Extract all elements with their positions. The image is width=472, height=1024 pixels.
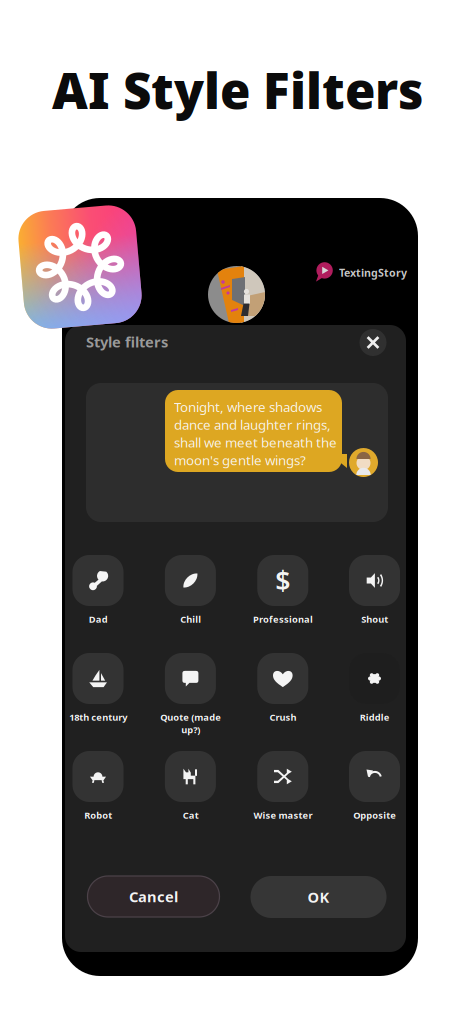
staticText: Tonight, where shadows dance and laughte… bbox=[174, 398, 337, 469]
staticText: TextingStory bbox=[339, 265, 407, 280]
button[interactable]: Opposite bbox=[334, 751, 414, 835]
staticText: Professional bbox=[253, 613, 313, 625]
staticText: 18th century bbox=[69, 711, 127, 723]
staticText: Quote (made up?) bbox=[160, 711, 221, 736]
button[interactable]: Chill bbox=[150, 555, 230, 639]
button[interactable]: Dad bbox=[58, 555, 138, 639]
staticText: OK bbox=[307, 887, 329, 907]
button[interactable]: 18th century bbox=[58, 653, 138, 737]
button[interactable]: Wise master bbox=[243, 751, 323, 835]
staticText: Chill bbox=[180, 613, 201, 625]
staticText: Cat bbox=[182, 809, 198, 821]
button[interactable]: Riddle bbox=[334, 653, 414, 737]
staticText: Dad bbox=[88, 613, 107, 625]
button[interactable]: Cancel bbox=[87, 876, 219, 917]
staticText: Style filters bbox=[86, 332, 168, 351]
button[interactable]: OK bbox=[250, 876, 386, 918]
staticText: Robot bbox=[84, 809, 112, 821]
staticText: Shout bbox=[361, 613, 388, 625]
button[interactable]: Robot bbox=[58, 751, 138, 835]
staticText: Wise master bbox=[253, 809, 312, 821]
button[interactable]: $ bbox=[243, 555, 323, 639]
button[interactable]: Quote (made up?) bbox=[150, 653, 230, 737]
staticText: Crush bbox=[269, 711, 296, 723]
button[interactable]: Close bbox=[359, 329, 386, 356]
staticText: Cancel bbox=[129, 887, 178, 906]
staticText: $ bbox=[275, 563, 290, 598]
button[interactable]: Crush bbox=[243, 653, 323, 737]
button[interactable]: Shout bbox=[334, 555, 414, 639]
staticText: AI Style Filters bbox=[52, 57, 424, 122]
button[interactable]: Cat bbox=[150, 751, 230, 835]
staticText: Riddle bbox=[359, 711, 389, 723]
staticText: Opposite bbox=[353, 809, 396, 821]
